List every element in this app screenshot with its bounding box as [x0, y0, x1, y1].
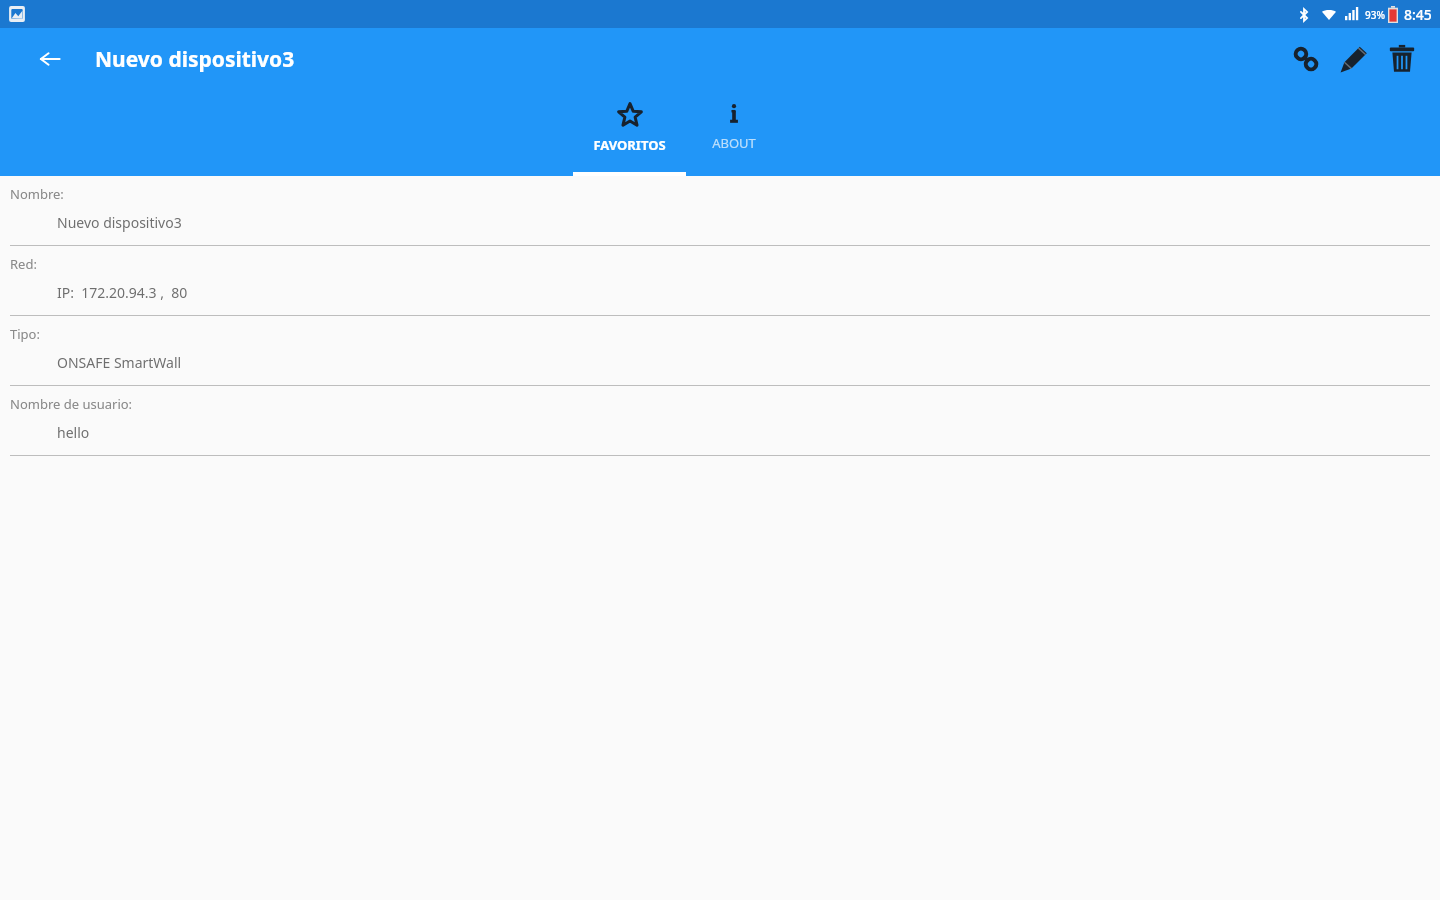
button[interactable]: ABOUT [686, 90, 781, 176]
button[interactable]: Edit [1330, 35, 1378, 83]
staticText: ONSAFE SmartWall [57, 353, 182, 372]
button[interactable]: Nombre de usuario: [0, 386, 1440, 456]
staticText: IP: 172.20.94.3 , 80 [57, 283, 188, 302]
button[interactable]: Nombre: [0, 176, 1440, 246]
staticText: Nombre: [10, 185, 64, 203]
staticText: Tipo: [10, 325, 40, 343]
button[interactable]: Tipo: [0, 316, 1440, 386]
staticText: 8:45 [1404, 5, 1432, 24]
staticText: Nuevo dispositivo3 [57, 213, 182, 232]
staticText: Nombre de usuario: [10, 395, 133, 413]
staticText: 93% [1365, 8, 1385, 22]
button[interactable]: Red: [0, 246, 1440, 316]
staticText: Nuevo dispositivo3 [95, 45, 295, 74]
staticText: ABOUT [712, 134, 756, 152]
button[interactable]: Link [1282, 35, 1330, 83]
button[interactable]: Back [30, 39, 70, 79]
staticText: Red: [10, 255, 37, 273]
staticText: FAVORITOS [593, 136, 666, 154]
button[interactable]: Delete [1378, 35, 1426, 83]
staticText: hello [57, 423, 90, 442]
button[interactable]: FAVORITOS [573, 90, 686, 176]
